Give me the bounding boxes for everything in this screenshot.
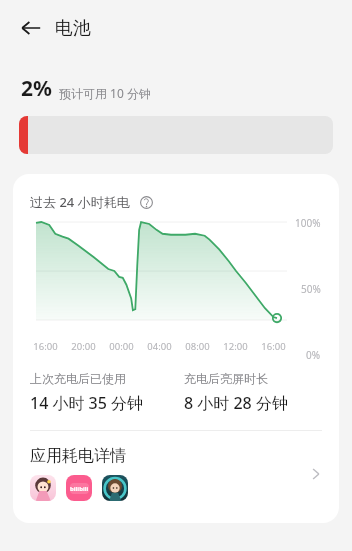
- staticText: 08:00: [185, 340, 210, 353]
- staticText: 2%: [21, 74, 52, 103]
- staticText: 上次充电后已使用: [30, 371, 126, 386]
- staticText: 00:00: [109, 340, 134, 353]
- staticText: 20:00: [71, 340, 96, 353]
- staticText: 预计可用 10 分钟: [59, 85, 151, 101]
- staticText: bilibili: [70, 485, 89, 493]
- staticText: 100%: [295, 216, 321, 230]
- staticText: 14 小时 35 分钟: [30, 392, 144, 414]
- staticText: 12:00: [223, 340, 248, 353]
- staticText: 16:00: [33, 340, 58, 353]
- staticText: 50%: [301, 282, 321, 296]
- button[interactable]: Back: [10, 7, 52, 49]
- staticText: 8 小时 28 分钟: [184, 392, 288, 414]
- staticText: 04:00: [147, 340, 172, 353]
- staticText: 应用耗电详情: [30, 446, 126, 466]
- staticText: 电池: [55, 17, 91, 40]
- staticText: 充电后亮屏时长: [184, 371, 268, 386]
- staticText: 16:00: [261, 340, 286, 353]
- staticText: 0%: [306, 348, 321, 362]
- button[interactable]: Help: [136, 192, 156, 212]
- staticText: 过去 24 小时耗电: [30, 193, 130, 211]
- button[interactable]: 应用耗电详情: [13, 431, 339, 523]
